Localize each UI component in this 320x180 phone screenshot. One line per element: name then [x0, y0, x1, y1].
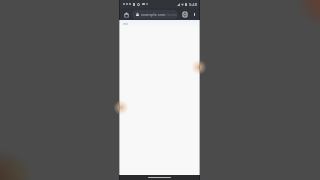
- button[interactable]: More options: [190, 10, 198, 18]
- staticText: 5:48: [189, 2, 197, 7]
- staticText: we: [123, 21, 129, 26]
- button[interactable]: Home gesture bar: [148, 177, 171, 178]
- button[interactable]: Home: [121, 9, 131, 19]
- button[interactable]: Tabs: [181, 10, 189, 18]
- staticText: example.com: [141, 12, 166, 17]
- button[interactable]: example.com: [132, 10, 178, 19]
- staticText: /search?q=howto-fix: [166, 12, 178, 17]
